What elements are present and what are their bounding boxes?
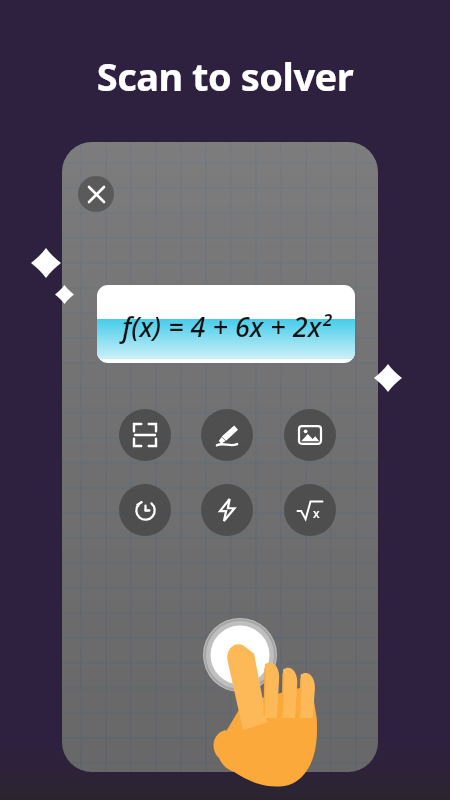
button[interactable]: Flash	[201, 484, 253, 536]
button[interactable]: Capture	[203, 618, 277, 692]
button[interactable]: f(x) = 4 + 6x + 2x²	[97, 285, 355, 363]
staticText: x	[313, 505, 320, 521]
button[interactable]: Math keyboard	[284, 484, 336, 536]
staticText: f(x) = 4 + 6x + 2x²	[122, 308, 331, 345]
button[interactable]: History	[119, 484, 171, 536]
button[interactable]: Gallery	[284, 409, 336, 461]
button[interactable]: Scan	[119, 409, 171, 461]
button[interactable]: Highlight	[201, 409, 253, 461]
button[interactable]: Close	[78, 176, 114, 212]
staticText: Scan to solver	[0, 50, 450, 102]
